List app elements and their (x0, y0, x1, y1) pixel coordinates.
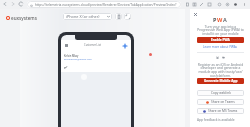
button[interactable]: Back (1, 0, 9, 8)
button[interactable]: Generate Mobile App (197, 78, 244, 84)
button[interactable]: Share on Teams (197, 99, 244, 105)
button[interactable]: Close (193, 12, 198, 17)
staticText: Generate Mobile App (204, 79, 238, 83)
staticText: Enable PWA (211, 38, 230, 42)
button[interactable]: Forward (9, 0, 17, 8)
button[interactable]: Profile (231, 0, 239, 8)
staticText: Copy weblink (211, 91, 231, 95)
staticText: W (217, 16, 223, 23)
staticText: Share on MS Teams (208, 109, 238, 113)
button[interactable]: History (215, 0, 223, 8)
staticText: P (213, 16, 217, 23)
staticText: Learn more about PWAs (203, 45, 237, 49)
staticText: Kelvin Mkay (64, 54, 79, 57)
staticText: kelvinmkay@gmail.com (64, 57, 92, 60)
button[interactable]: Bookmark (183, 0, 191, 8)
button[interactable]: Reload (17, 0, 25, 8)
button[interactable]: Edit (197, 0, 205, 8)
button[interactable]: Extensions (223, 0, 231, 8)
staticText: Customer List (84, 43, 101, 47)
button[interactable]: Rotate device (115, 13, 122, 20)
button[interactable]: euxsystems (6, 15, 37, 21)
staticText: Register as an iOS or Android developer … (197, 62, 244, 78)
staticText: App feedback is available (197, 118, 235, 122)
button[interactable]: Kelvin Mkay (61, 50, 131, 72)
button[interactable]: More options (240, 0, 248, 8)
staticText: A (223, 16, 227, 23)
button[interactable]: Copy weblink (197, 90, 244, 96)
button[interactable]: Split view (190, 0, 198, 8)
button[interactable]: iPhone X (or other) (63, 13, 112, 20)
staticText: Share on Teams (211, 100, 235, 104)
button[interactable]: Menu (64, 43, 69, 48)
button[interactable]: Save page (205, 0, 213, 8)
staticText: Turn your app into a Progressive Web App… (197, 24, 244, 40)
staticText: iPhone X (or other) (66, 14, 100, 19)
staticText: https://telemetria.euxsystems.cloud/prev… (35, 3, 181, 7)
button[interactable]: Share on MS Teams (197, 108, 244, 114)
button[interactable]: Add customer (122, 43, 127, 48)
button[interactable]: Enable PWA (197, 37, 244, 43)
button[interactable]: Learn more about PWAs (190, 45, 250, 49)
staticText: euxsystems (11, 15, 37, 21)
button[interactable]: Fullscreen (124, 13, 131, 20)
button[interactable]: https://telemetria.euxsystems.cloud/prev… (27, 1, 181, 8)
